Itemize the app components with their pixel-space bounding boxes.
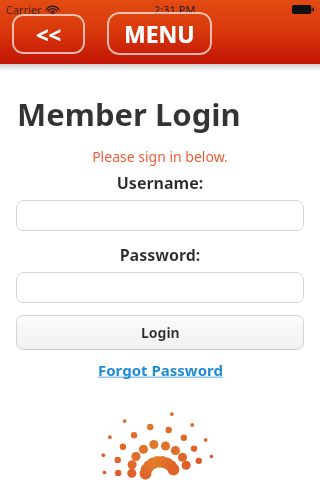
button[interactable]: MENU — [107, 12, 212, 55]
button[interactable]: Login — [16, 315, 304, 350]
staticText: MENU — [124, 18, 195, 49]
staticText: 2:31 PM — [154, 2, 196, 17]
staticText: Password: — [0, 244, 320, 266]
staticText: Please sign in below. — [0, 147, 320, 166]
staticText: Username: — [0, 172, 320, 194]
button[interactable]: Text input field — [16, 272, 304, 303]
staticText: << — [36, 19, 62, 49]
staticText: Carrier — [6, 2, 42, 17]
staticText: Login — [141, 323, 180, 342]
button[interactable]: Text input field — [16, 200, 304, 231]
staticText: Member Login — [17, 93, 241, 135]
staticText: Forgot Password — [98, 360, 223, 380]
button[interactable]: Forgot Password — [0, 360, 320, 380]
button[interactable]: Back — [12, 14, 85, 54]
